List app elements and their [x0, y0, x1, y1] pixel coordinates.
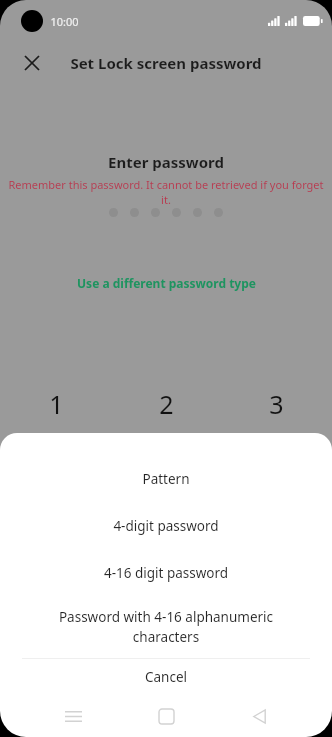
button[interactable]: Home — [146, 696, 186, 736]
button[interactable]: Use a different password type — [69, 271, 264, 295]
staticText: Remember this password. It cannot be ret… — [4, 177, 328, 207]
button[interactable]: 3 — [242, 386, 310, 422]
staticText: 1 — [49, 387, 64, 421]
button[interactable]: Cancel — [0, 659, 332, 694]
staticText: Cancel — [24, 668, 308, 686]
button[interactable]: 4-16 digit password — [0, 549, 332, 596]
staticText: Use a different password type — [77, 275, 256, 291]
staticText: 4-digit password — [24, 517, 308, 535]
staticText: Password with 4-16 alphanumeric characte… — [24, 608, 308, 646]
staticText: 10:00 — [50, 14, 79, 29]
button[interactable]: Password with 4-16 alphanumeric characte… — [0, 596, 332, 658]
button[interactable]: 2 — [132, 386, 200, 422]
staticText: 4-16 digit password — [24, 564, 308, 582]
staticText: 2 — [159, 387, 174, 421]
button[interactable]: Recents — [53, 696, 93, 736]
button[interactable]: 4-digit password — [0, 502, 332, 549]
button[interactable]: 1 — [22, 386, 90, 422]
button[interactable]: Back — [239, 696, 279, 736]
staticText: Enter password — [108, 152, 224, 172]
staticText: Set Lock screen password — [70, 53, 262, 73]
staticText: Pattern — [24, 470, 308, 488]
button[interactable]: Pattern — [0, 455, 332, 502]
staticText: 3 — [269, 387, 284, 421]
button[interactable]: Close — [17, 48, 47, 78]
